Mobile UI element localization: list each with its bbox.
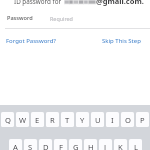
- button[interactable]: F: [54, 139, 67, 150]
- staticText: S: [28, 142, 33, 150]
- staticText: H: [88, 142, 94, 150]
- staticText: Required: [50, 15, 73, 22]
- staticText: @gmail.com.: [96, 0, 144, 6]
- button[interactable]: H: [84, 139, 97, 150]
- button[interactable]: R: [46, 112, 59, 127]
- button[interactable]: Skip This Step: [102, 37, 141, 45]
- staticText: Forgot Password?: [6, 37, 56, 45]
- button[interactable]: A: [9, 139, 22, 150]
- button[interactable]: P: [136, 112, 149, 127]
- button[interactable]: K: [114, 139, 127, 150]
- button[interactable]: I: [106, 112, 119, 127]
- button[interactable]: J: [99, 139, 112, 150]
- button[interactable]: W: [16, 112, 29, 127]
- staticText: P: [140, 115, 145, 125]
- button[interactable]: T: [61, 112, 74, 127]
- staticText: E: [35, 115, 40, 125]
- staticText: I: [111, 115, 114, 125]
- staticText: Y: [80, 115, 85, 125]
- staticText: Password: [7, 14, 33, 22]
- staticText: U: [95, 115, 101, 125]
- staticText: Skip This Step: [102, 37, 141, 45]
- button[interactable]: Y: [76, 112, 89, 127]
- button[interactable]: Forgot Password?: [6, 37, 56, 45]
- staticText: G: [73, 142, 79, 150]
- staticText: J: [104, 142, 107, 150]
- staticText: A: [13, 142, 18, 150]
- button[interactable]: O: [121, 112, 134, 127]
- staticText: W: [19, 115, 27, 125]
- staticText: D: [43, 142, 49, 150]
- button[interactable]: U: [91, 112, 104, 127]
- button[interactable]: L: [129, 139, 142, 150]
- staticText: T: [65, 115, 70, 125]
- staticText: Q: [5, 115, 11, 125]
- button[interactable]: D: [39, 139, 52, 150]
- staticText: R: [50, 115, 55, 125]
- button[interactable]: E: [31, 112, 44, 127]
- button[interactable]: Q: [1, 112, 14, 127]
- button[interactable]: G: [69, 139, 82, 150]
- staticText: O: [125, 115, 131, 125]
- staticText: ID password for: [14, 0, 62, 6]
- staticText: L: [134, 142, 138, 150]
- staticText: K: [118, 142, 123, 150]
- staticText: F: [59, 142, 63, 150]
- button[interactable]: S: [24, 139, 37, 150]
